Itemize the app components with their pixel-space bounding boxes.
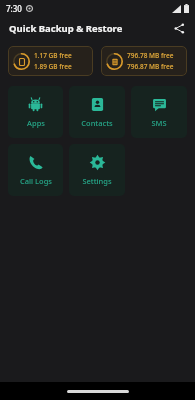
button[interactable]: Internal storage (8, 46, 93, 76)
staticText: Settings (82, 176, 112, 186)
button[interactable]: Apps (8, 86, 63, 138)
button[interactable]: Memory (101, 46, 187, 76)
staticText: 1.17 GB free (34, 51, 72, 60)
staticText: 7:30 (6, 3, 22, 14)
button[interactable]: Share (169, 18, 189, 38)
button[interactable]: Contacts (69, 86, 125, 138)
button[interactable]: Call Logs (8, 144, 63, 196)
staticText: SMS (151, 118, 167, 128)
staticText: Contacts (81, 118, 113, 128)
staticText: Call Logs (20, 176, 52, 186)
staticText: 796.78 MB free (127, 51, 174, 60)
button[interactable]: SMS (131, 86, 187, 138)
staticText: Quick Backup & Restore (9, 22, 123, 35)
staticText: 1.89 GB free (34, 62, 72, 71)
staticText: Apps (27, 118, 45, 128)
staticText: 796.87 MB free (127, 62, 174, 71)
button[interactable]: Settings (69, 144, 125, 196)
